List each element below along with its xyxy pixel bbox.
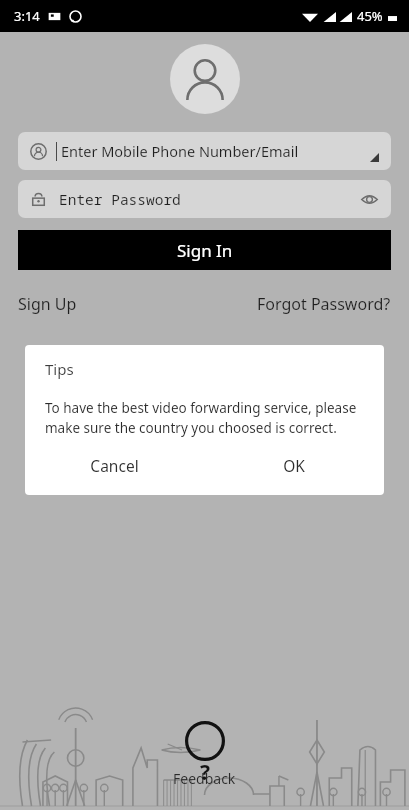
staticText: 45% xyxy=(357,7,383,25)
button[interactable]: Forgot Password? xyxy=(257,290,391,318)
staticText: Sign In xyxy=(177,239,233,262)
button[interactable]: Sign In xyxy=(18,230,391,270)
staticText: Enter Mobile Phone Number/Email xyxy=(61,141,299,161)
staticText: Feedback xyxy=(173,769,236,788)
button[interactable]: Enter Mobile Phone Number/Email xyxy=(18,132,391,170)
staticText: Cancel xyxy=(90,455,139,476)
button[interactable]: Show password xyxy=(359,189,379,209)
staticText: Forgot Password? xyxy=(257,293,391,315)
button[interactable]: Cancel xyxy=(25,443,204,487)
staticText: Sign Up xyxy=(18,293,77,315)
button[interactable]: OK xyxy=(204,443,384,487)
staticText: Enter Password xyxy=(59,189,181,209)
button[interactable]: Enter Password xyxy=(18,180,391,218)
button[interactable]: Sign Up xyxy=(18,290,77,318)
staticText: OK xyxy=(283,455,305,476)
staticText: To have the best video forwarding servic… xyxy=(45,399,357,437)
button[interactable]: Profile photo xyxy=(170,44,240,114)
staticText: 3:14 xyxy=(14,7,40,25)
staticText: Tips xyxy=(45,359,74,379)
staticText: ? xyxy=(200,758,211,787)
button[interactable]: Feedback xyxy=(173,721,236,792)
